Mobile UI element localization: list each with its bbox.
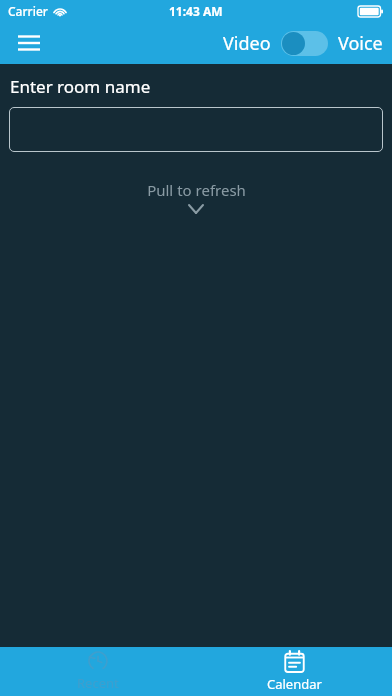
staticText: 11:43 AM <box>169 3 223 19</box>
button[interactable]: Recent <box>0 647 196 696</box>
button[interactable]: Room name input <box>9 107 383 152</box>
staticText: Recent <box>77 674 119 692</box>
button[interactable]: Calendar <box>196 647 392 696</box>
button[interactable]: Menu <box>10 24 48 62</box>
staticText: Carrier <box>8 3 48 19</box>
staticText: Calendar <box>267 675 322 693</box>
staticText: Pull to refresh <box>147 180 246 200</box>
button[interactable]: Voice <box>338 31 383 56</box>
staticText: Enter room name <box>10 75 151 98</box>
button[interactable]: Video <box>223 31 271 56</box>
button[interactable]: Toggle video or voice <box>281 31 328 56</box>
